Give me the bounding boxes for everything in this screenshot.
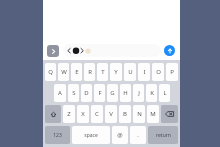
staticText: O	[156, 68, 161, 76]
staticText: L	[163, 89, 167, 97]
staticText: E	[75, 68, 79, 76]
staticText: S	[72, 89, 76, 97]
button[interactable]: V	[105, 105, 117, 123]
staticText: .	[137, 131, 139, 139]
staticText: Y	[114, 68, 118, 76]
staticText: H	[123, 89, 128, 97]
button[interactable]: B	[119, 105, 131, 123]
button[interactable]: J	[133, 84, 144, 102]
staticText: space	[84, 132, 98, 139]
staticText: B	[123, 110, 127, 118]
button[interactable]: Z	[63, 105, 75, 123]
staticText: D	[84, 89, 89, 97]
staticText: X	[81, 110, 85, 118]
staticText: T	[101, 68, 105, 76]
button[interactable]: return	[148, 126, 178, 144]
staticText: return	[156, 132, 171, 139]
button[interactable]: .	[130, 126, 146, 144]
button[interactable]: N	[133, 105, 145, 123]
button[interactable]: E	[71, 63, 82, 81]
staticText: K	[150, 89, 154, 97]
staticText: U	[128, 68, 133, 76]
button[interactable]: Q	[45, 63, 56, 81]
staticText: Z	[67, 110, 71, 118]
button[interactable]	[63, 44, 161, 57]
button[interactable]: T	[97, 63, 108, 81]
staticText: Q	[48, 68, 53, 76]
button[interactable]: X	[77, 105, 89, 123]
staticText: C	[95, 110, 99, 118]
button[interactable]: K	[146, 84, 157, 102]
staticText: I	[143, 68, 146, 76]
button[interactable]: M	[147, 105, 159, 123]
staticText: V	[109, 110, 113, 118]
button[interactable]: @	[112, 126, 128, 144]
button[interactable]: R	[84, 63, 95, 81]
staticText: @	[117, 131, 123, 139]
button[interactable]: Delete	[161, 105, 178, 123]
button[interactable]: C	[91, 105, 103, 123]
staticText: N	[137, 110, 142, 118]
staticText: J	[138, 89, 140, 97]
button[interactable]: G	[107, 84, 118, 102]
button[interactable]: L	[159, 84, 170, 102]
staticText: 123	[53, 132, 62, 139]
button[interactable]: O	[152, 63, 164, 81]
button[interactable]: Y	[110, 63, 122, 81]
button[interactable]: Send	[164, 45, 175, 56]
staticText: M	[150, 110, 156, 118]
button[interactable]: F	[94, 84, 105, 102]
button[interactable]: W	[58, 63, 69, 81]
staticText: G	[110, 89, 115, 97]
button[interactable]: Apps	[47, 45, 59, 57]
button[interactable]: D	[81, 84, 92, 102]
button[interactable]: Shift	[45, 105, 61, 123]
button[interactable]: H	[120, 84, 131, 102]
staticText: F	[98, 89, 102, 97]
button[interactable]: U	[124, 63, 136, 81]
staticText: P	[170, 68, 174, 76]
staticText: R	[88, 68, 92, 76]
button[interactable]: P	[166, 63, 178, 81]
staticText: W	[61, 68, 67, 76]
button[interactable]: I	[138, 63, 150, 81]
staticText: A	[58, 89, 62, 97]
button[interactable]: S	[68, 84, 79, 102]
button[interactable]: A	[54, 84, 66, 102]
button[interactable]: 123	[45, 126, 70, 144]
button[interactable]: space	[72, 126, 110, 144]
